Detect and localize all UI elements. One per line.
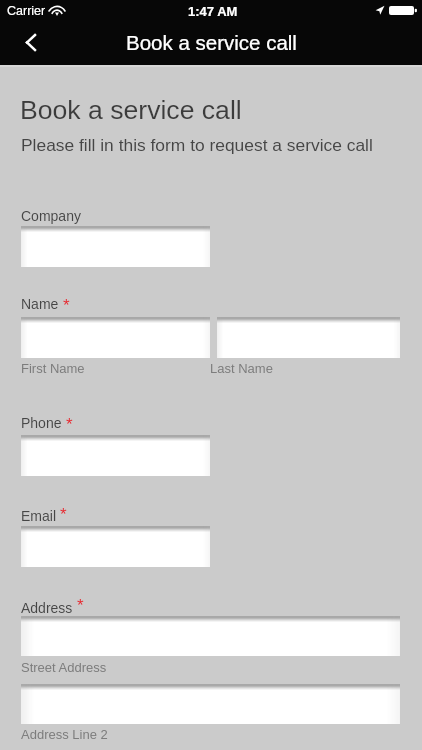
button[interactable]: Last Name: [217, 317, 400, 358]
button[interactable]: Back: [10, 24, 50, 64]
staticText: Email: [21, 508, 57, 524]
button[interactable]: Phone: [21, 435, 210, 476]
staticText: *: [63, 296, 70, 315]
staticText: Name: [21, 296, 59, 312]
staticText: First Name: [21, 361, 85, 376]
staticText: *: [60, 505, 67, 524]
button[interactable]: Street Address: [21, 616, 400, 656]
button[interactable]: Email: [21, 526, 210, 567]
button[interactable]: Company: [21, 226, 210, 267]
staticText: Book a service call: [20, 95, 242, 125]
staticText: Last Name: [210, 361, 273, 376]
button[interactable]: Address Line 2: [21, 684, 400, 724]
staticText: Address Line 2: [21, 727, 108, 742]
staticText: *: [66, 415, 73, 434]
staticText: Company: [21, 208, 81, 224]
staticText: Carrier: [7, 4, 46, 18]
staticText: *: [77, 596, 84, 615]
staticText: Phone: [21, 415, 62, 431]
staticText: Address: [21, 600, 73, 616]
staticText: Please fill in this form to request a se…: [21, 135, 373, 154]
button[interactable]: First Name: [21, 317, 210, 358]
staticText: Book a service call: [126, 31, 297, 54]
staticText: Street Address: [21, 660, 107, 675]
staticText: 1:47 AM: [188, 4, 238, 19]
